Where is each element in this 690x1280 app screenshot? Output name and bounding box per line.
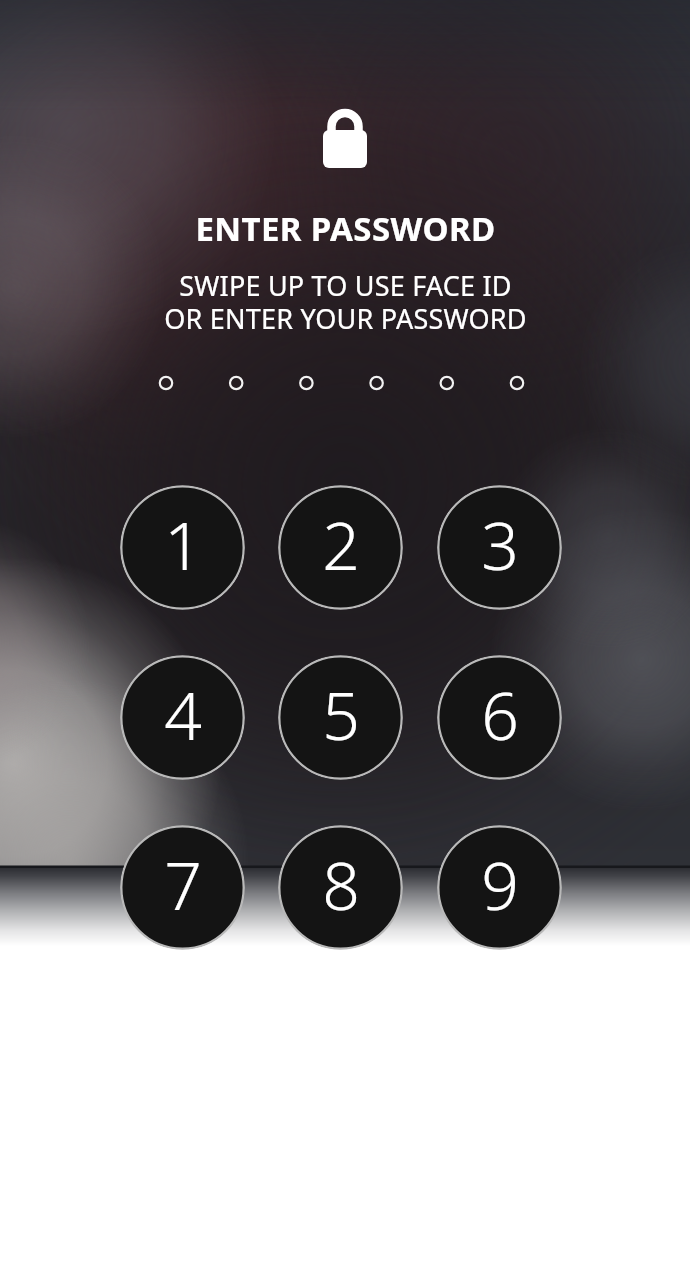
staticText: 2 bbox=[322, 499, 360, 589]
button[interactable]: 8 bbox=[278, 825, 403, 950]
button[interactable]: 5 bbox=[278, 655, 403, 780]
staticText: 7 bbox=[164, 839, 202, 929]
other: Locked bbox=[322, 110, 368, 170]
staticText: 1 bbox=[164, 499, 202, 589]
button[interactable]: 1 bbox=[120, 485, 245, 610]
staticText: ENTER PASSWORD bbox=[195, 206, 496, 251]
button[interactable]: 3 bbox=[437, 485, 562, 610]
staticText: 6 bbox=[481, 669, 519, 759]
staticText: 8 bbox=[322, 839, 360, 929]
button[interactable]: 9 bbox=[437, 825, 562, 950]
staticText: 4 bbox=[164, 669, 202, 759]
staticText: 3 bbox=[481, 499, 519, 589]
staticText: SWIPE UP TO USE FACE ID OR ENTER YOUR PA… bbox=[164, 267, 527, 337]
staticText: 5 bbox=[322, 669, 360, 759]
button[interactable]: 2 bbox=[278, 485, 403, 610]
button[interactable]: 6 bbox=[437, 655, 562, 780]
staticText: 9 bbox=[481, 839, 519, 929]
button[interactable]: 7 bbox=[120, 825, 245, 950]
button[interactable]: 4 bbox=[120, 655, 245, 780]
